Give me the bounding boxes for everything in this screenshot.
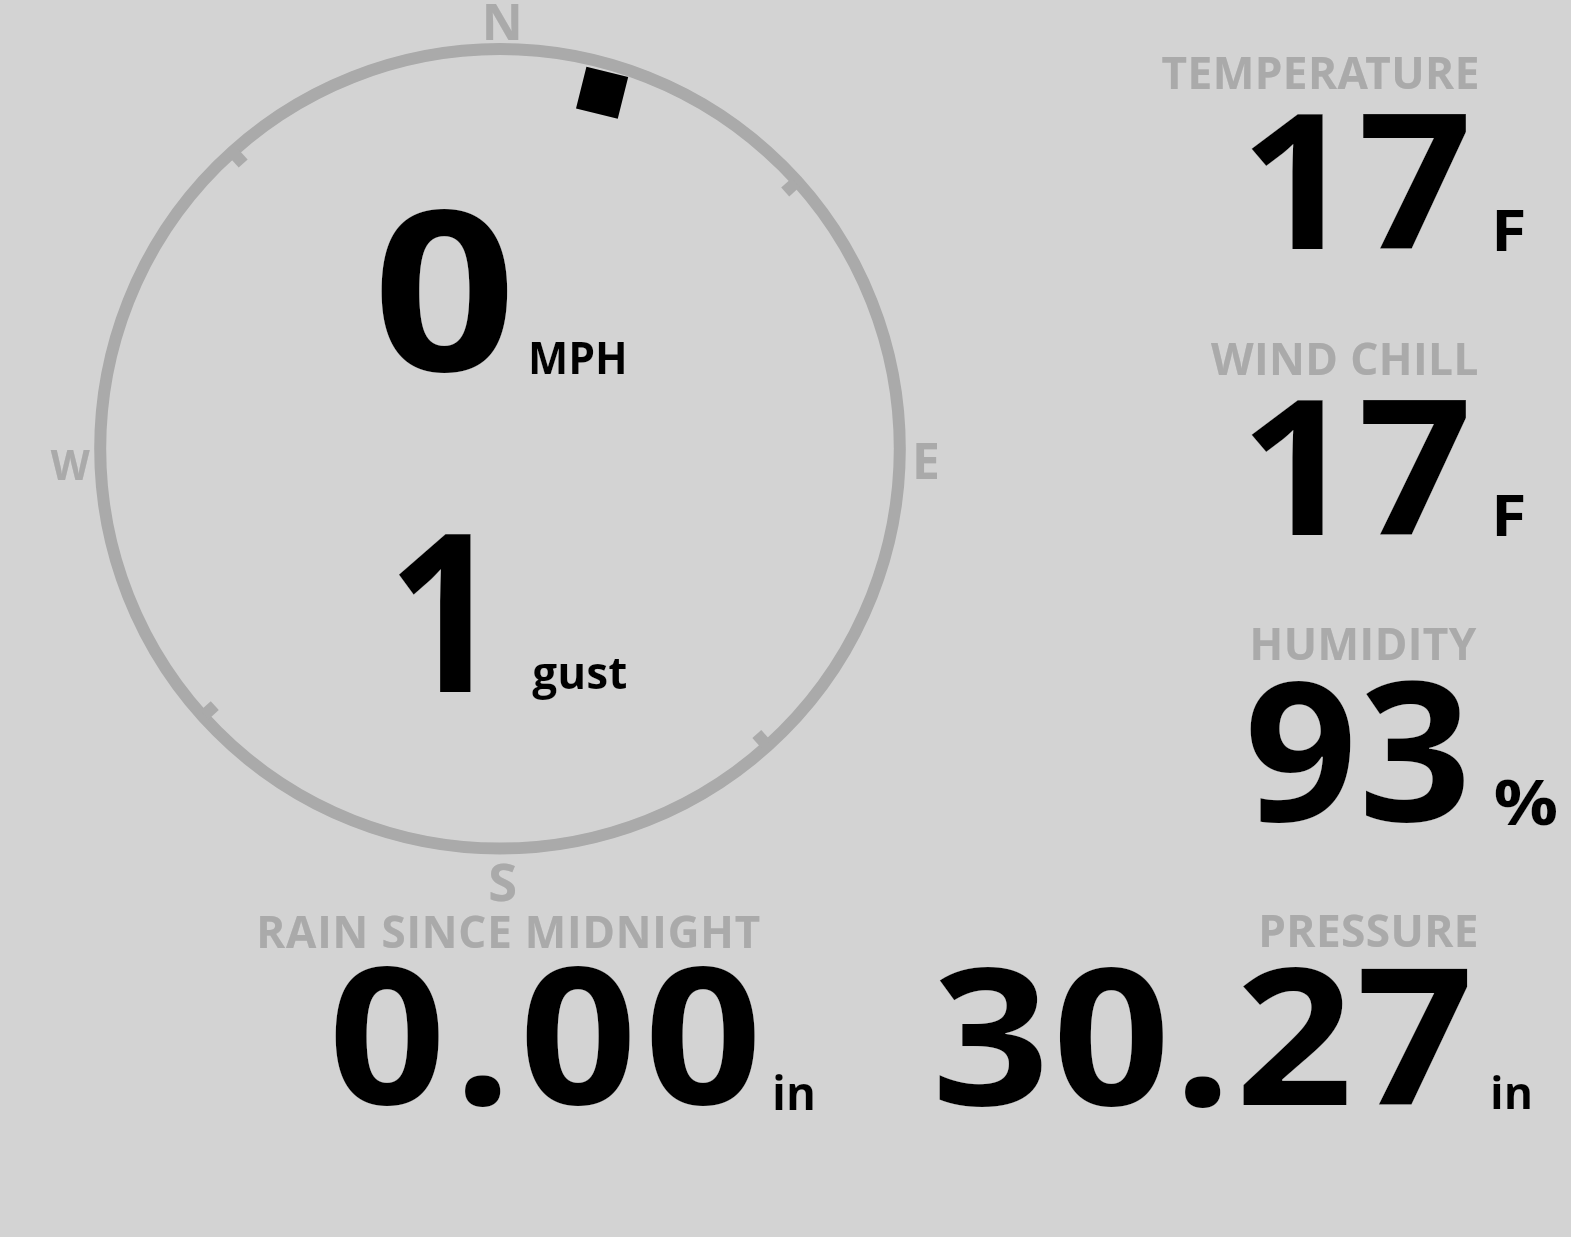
button[interactable]: Weather station dashboard bbox=[0, 0, 1571, 1237]
